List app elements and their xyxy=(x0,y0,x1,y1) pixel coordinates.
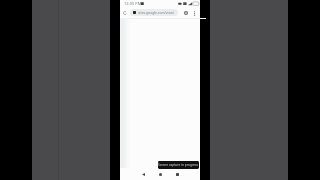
button[interactable]: sites.google.com/view/retest12 xyxy=(130,9,178,16)
button[interactable]: Switch tabs xyxy=(181,8,190,17)
button[interactable]: Reload page xyxy=(120,8,129,17)
button[interactable]: Home xyxy=(155,169,165,179)
staticText: sites.google.com/view/retest12 xyxy=(138,10,178,15)
staticText: Screen capture in progress xyxy=(158,163,199,167)
staticText: 12:05 PM xyxy=(124,1,142,6)
button[interactable]: More options xyxy=(190,9,198,17)
button[interactable]: Recent apps xyxy=(172,169,182,179)
button[interactable]: Back xyxy=(138,169,148,179)
